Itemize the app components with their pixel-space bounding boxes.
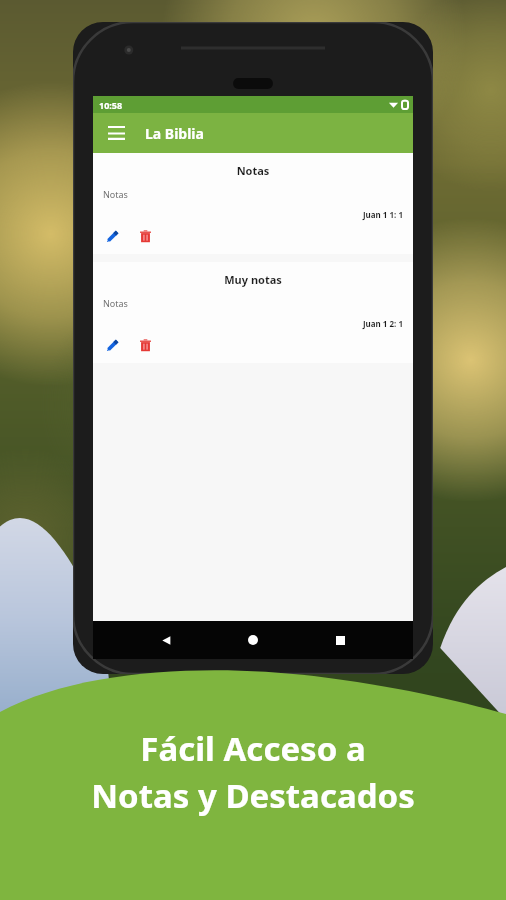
button[interactable]: Back	[152, 626, 180, 654]
staticText: Juan 1 2: 1	[103, 318, 403, 329]
button[interactable]: Open navigation menu	[101, 118, 131, 148]
staticText: La Biblia	[145, 124, 204, 143]
staticText: Fácil Acceso a	[140, 726, 366, 771]
staticText: Notas	[103, 163, 403, 178]
staticText: Notas	[103, 188, 128, 200]
button[interactable]: Edit note	[103, 226, 123, 246]
button[interactable]: Muy notas	[93, 262, 413, 363]
button[interactable]: Edit note	[103, 335, 123, 355]
button[interactable]: Recent apps	[326, 626, 354, 654]
staticText: Notas	[103, 297, 128, 309]
staticText: Juan 1 1: 1	[103, 209, 403, 220]
staticText: 10:58	[99, 99, 123, 111]
staticText: Muy notas	[103, 272, 403, 287]
button[interactable]: Notas	[93, 153, 413, 254]
button[interactable]: Delete note	[135, 226, 155, 246]
button[interactable]: Home	[239, 626, 267, 654]
staticText: Notas y Destacados	[91, 773, 415, 818]
button[interactable]: Delete note	[135, 335, 155, 355]
